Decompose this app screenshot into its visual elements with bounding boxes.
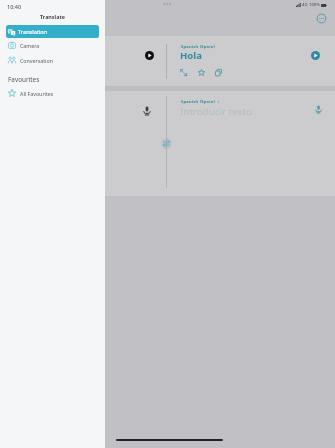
staticText: Hola (180, 49, 202, 62)
button[interactable]: Voice input (314, 105, 323, 114)
staticText: Introducir texto (180, 105, 253, 118)
button[interactable]: Conversation (6, 53, 99, 66)
button[interactable]: Voice input (142, 106, 152, 116)
button[interactable]: Swap languages (161, 138, 172, 149)
button[interactable]: All Favourites (6, 86, 99, 99)
button[interactable]: Play original (145, 51, 154, 60)
button[interactable]: Copy (215, 69, 222, 76)
staticText: Favourites (8, 75, 40, 84)
staticText: Spanish (Spain) › (181, 99, 220, 105)
button[interactable]: Play translation (311, 51, 320, 60)
staticText: Translate (40, 13, 65, 20)
staticText: 4G (302, 2, 308, 8)
button[interactable]: Add to favourites (198, 69, 205, 76)
staticText: 100% (309, 2, 320, 8)
button[interactable]: Camera (6, 38, 99, 51)
staticText: Conversation (20, 57, 53, 64)
staticText: Translation (18, 28, 48, 36)
staticText: 10:40 (7, 3, 22, 10)
staticText: Camera (20, 42, 40, 49)
button[interactable]: More options (316, 13, 327, 24)
button[interactable]: Expand (180, 69, 187, 76)
button[interactable]: Translation (6, 25, 99, 38)
staticText: All Favourites (20, 90, 54, 97)
staticText: Spanish (Spain) (181, 44, 216, 50)
